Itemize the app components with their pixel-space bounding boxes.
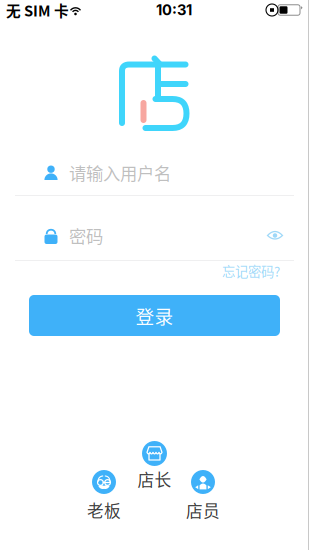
- staticText: 忘记密码?: [222, 261, 280, 281]
- button[interactable]: 店长: [134, 441, 174, 491]
- staticText: 10:31: [156, 1, 192, 19]
- staticText: 店长: [137, 467, 171, 491]
- staticText: 密码: [69, 223, 103, 248]
- staticText: 请输入用户名: [69, 160, 171, 185]
- staticText: 老板: [87, 498, 121, 522]
- button[interactable]: 忘记密码?: [222, 261, 280, 281]
- staticText: 登录: [135, 302, 173, 329]
- button[interactable]: 登录: [29, 295, 280, 336]
- button[interactable]: 店员: [183, 470, 223, 522]
- staticText: 无 SIM 卡: [6, 0, 69, 21]
- staticText: 店员: [186, 498, 220, 522]
- button[interactable]: Show password: [267, 229, 283, 241]
- button[interactable]: 老板: [84, 470, 124, 522]
